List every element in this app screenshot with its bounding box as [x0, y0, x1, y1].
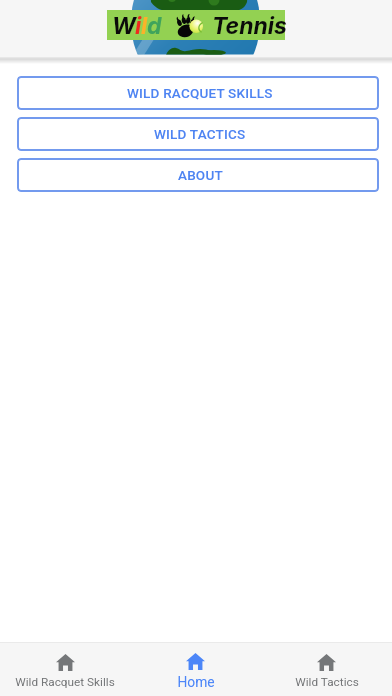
staticText: ABOUT: [178, 167, 223, 183]
staticText: WILD RACQUET SKILLS: [127, 85, 273, 101]
button[interactable]: ABOUT: [17, 158, 379, 192]
button[interactable]: WILD RACQUET SKILLS: [17, 76, 379, 110]
button[interactable]: WILD TACTICS: [17, 117, 379, 151]
staticText: W: [112, 12, 135, 40]
staticText: WILD TACTICS: [154, 126, 246, 142]
button[interactable]: Wild Racquet Skills: [0, 643, 130, 696]
button[interactable]: Home: [130, 643, 261, 696]
staticText: Tennis: [212, 12, 287, 40]
staticText: i: [135, 12, 141, 40]
staticText: Home: [177, 674, 215, 690]
staticText: l: [141, 12, 147, 40]
staticText: Wild Racquet Skills: [15, 675, 115, 689]
button[interactable]: Wild Tactics: [261, 643, 392, 696]
staticText: Wild Tactics: [295, 675, 359, 689]
staticText: d: [147, 12, 161, 40]
